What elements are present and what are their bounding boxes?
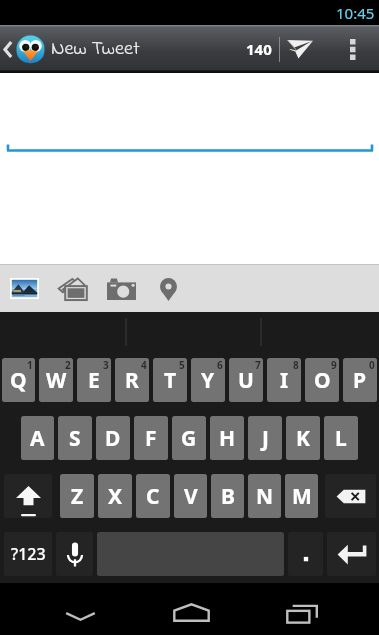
staticText: N bbox=[256, 482, 274, 511]
button[interactable]: Q bbox=[2, 358, 35, 402]
staticText: 7 bbox=[255, 358, 261, 372]
button[interactable]: Attached photo bbox=[0, 265, 49, 312]
button[interactable]: Voice input bbox=[56, 532, 93, 576]
button[interactable]: W bbox=[39, 358, 73, 402]
button[interactable]: U bbox=[229, 358, 263, 402]
button[interactable]: Back bbox=[0, 25, 16, 73]
button[interactable]: Enter bbox=[327, 532, 376, 576]
button[interactable]: Z bbox=[60, 474, 94, 518]
staticText: J bbox=[262, 424, 269, 453]
button[interactable]: L bbox=[324, 416, 358, 460]
button[interactable]: Gallery bbox=[49, 265, 97, 312]
button[interactable]: T bbox=[153, 358, 187, 402]
staticText: B bbox=[221, 482, 235, 511]
staticText: 4 bbox=[141, 358, 147, 372]
staticText: E bbox=[88, 366, 100, 395]
staticText: R bbox=[125, 366, 139, 395]
button[interactable]: Camera bbox=[97, 265, 145, 312]
staticText: 9 bbox=[331, 358, 337, 372]
staticText: Y bbox=[201, 366, 215, 395]
button[interactable]: Hide keyboard bbox=[52, 605, 108, 627]
button[interactable]: Send tweet bbox=[280, 25, 313, 73]
button[interactable]: B bbox=[211, 474, 244, 518]
button[interactable]: ?123 bbox=[4, 532, 52, 576]
button[interactable]: J bbox=[248, 416, 282, 460]
button[interactable]: K bbox=[286, 416, 320, 460]
button[interactable]: R bbox=[115, 358, 149, 402]
staticText: Q bbox=[10, 366, 27, 395]
staticText: H bbox=[219, 424, 236, 453]
staticText: I bbox=[280, 366, 289, 395]
staticText: F bbox=[145, 424, 157, 453]
staticText: X bbox=[108, 482, 123, 511]
button[interactable]: E bbox=[77, 358, 111, 402]
staticText: T bbox=[164, 366, 177, 395]
button[interactable]: C bbox=[136, 474, 170, 518]
button[interactable]: P bbox=[343, 358, 377, 402]
staticText: D bbox=[105, 424, 121, 453]
staticText: 6 bbox=[217, 358, 223, 372]
button[interactable]: Y bbox=[191, 358, 225, 402]
staticText: New Tweet bbox=[51, 35, 140, 64]
button[interactable]: More options bbox=[313, 25, 379, 73]
staticText: S bbox=[69, 424, 81, 453]
staticText: V bbox=[184, 482, 198, 511]
button[interactable]: A bbox=[21, 416, 54, 460]
button[interactable]: H bbox=[210, 416, 244, 460]
button[interactable]: Period bbox=[288, 532, 323, 576]
button[interactable]: Home bbox=[163, 596, 219, 628]
button[interactable]: F bbox=[134, 416, 168, 460]
button[interactable]: S bbox=[58, 416, 92, 460]
staticText: L bbox=[335, 424, 347, 453]
button[interactable]: Backspace bbox=[325, 474, 376, 518]
staticText: 0 bbox=[369, 358, 375, 372]
staticText: 5 bbox=[179, 358, 185, 372]
staticText: C bbox=[146, 482, 160, 511]
button[interactable]: Location bbox=[145, 265, 191, 312]
button[interactable]: Recent apps bbox=[276, 597, 330, 629]
staticText: 3 bbox=[103, 358, 109, 372]
button[interactable]: G bbox=[172, 416, 206, 460]
button[interactable]: N bbox=[248, 474, 281, 518]
button[interactable]: X bbox=[98, 474, 132, 518]
button[interactable]: O bbox=[305, 358, 339, 402]
staticText: U bbox=[238, 366, 254, 395]
staticText: K bbox=[296, 424, 310, 453]
staticText: Z bbox=[71, 482, 84, 511]
staticText: 8 bbox=[293, 358, 299, 372]
staticText: A bbox=[30, 424, 45, 453]
staticText: W bbox=[46, 366, 67, 395]
staticText: G bbox=[181, 424, 197, 453]
staticText: 2 bbox=[65, 358, 71, 372]
staticText: 1 bbox=[27, 358, 33, 372]
staticText: M bbox=[292, 482, 312, 511]
button[interactable]: D bbox=[96, 416, 130, 460]
button[interactable]: M bbox=[285, 474, 318, 518]
staticText: P bbox=[353, 366, 367, 395]
button[interactable]: Shift bbox=[4, 474, 52, 518]
button[interactable]: I bbox=[267, 358, 301, 402]
staticText: O bbox=[314, 366, 331, 395]
button[interactable]: V bbox=[174, 474, 207, 518]
staticText: ?123 bbox=[11, 543, 46, 565]
staticText: 140 bbox=[246, 39, 272, 59]
staticText: 10:45 bbox=[336, 3, 375, 23]
